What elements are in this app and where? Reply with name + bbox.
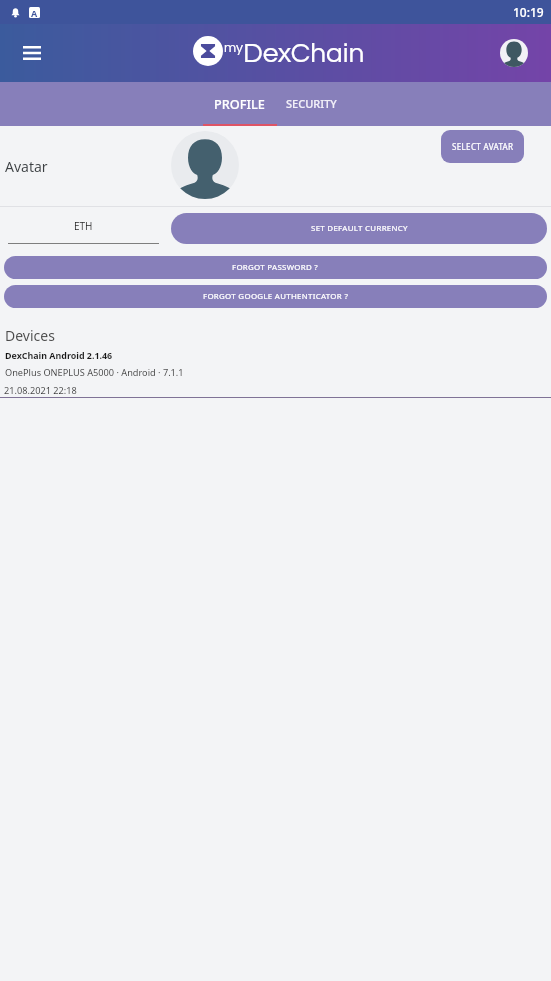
staticText: SECURITY <box>286 96 337 111</box>
button[interactable]: SECURITY <box>276 82 346 126</box>
staticText: SET DEFAULT CURRENCY <box>311 223 408 234</box>
button[interactable]: PROFILE <box>202 82 276 126</box>
button[interactable]: SET DEFAULT CURRENCY <box>171 213 547 244</box>
staticText: OnePlus ONEPLUS A5000 · Android · 7.1.1 <box>5 366 184 379</box>
staticText: 10:19 <box>513 4 544 20</box>
staticText: 21.08.2021 22:18 <box>4 384 77 397</box>
button[interactable]: FORGOT GOOGLE AUTHENTICATOR ? <box>4 285 547 308</box>
staticText: Devices <box>5 326 55 345</box>
staticText: A <box>31 7 38 18</box>
staticText: my <box>224 41 243 55</box>
staticText: Avatar <box>5 157 48 176</box>
button[interactable]: SELECT AVATAR <box>441 130 524 163</box>
staticText: DexChain <box>243 39 365 68</box>
button[interactable]: Account <box>497 36 531 70</box>
button[interactable]: FORGOT PASSWORD ? <box>4 256 547 279</box>
staticText: FORGOT PASSWORD ? <box>232 262 319 273</box>
staticText: PROFILE <box>214 95 265 112</box>
staticText: SELECT AVATAR <box>452 141 514 152</box>
staticText: ETH <box>74 219 93 233</box>
button[interactable]: Open navigation menu <box>14 35 50 71</box>
staticText: FORGOT GOOGLE AUTHENTICATOR ? <box>203 291 349 302</box>
staticText: DexChain Android 2.1.46 <box>5 349 113 361</box>
